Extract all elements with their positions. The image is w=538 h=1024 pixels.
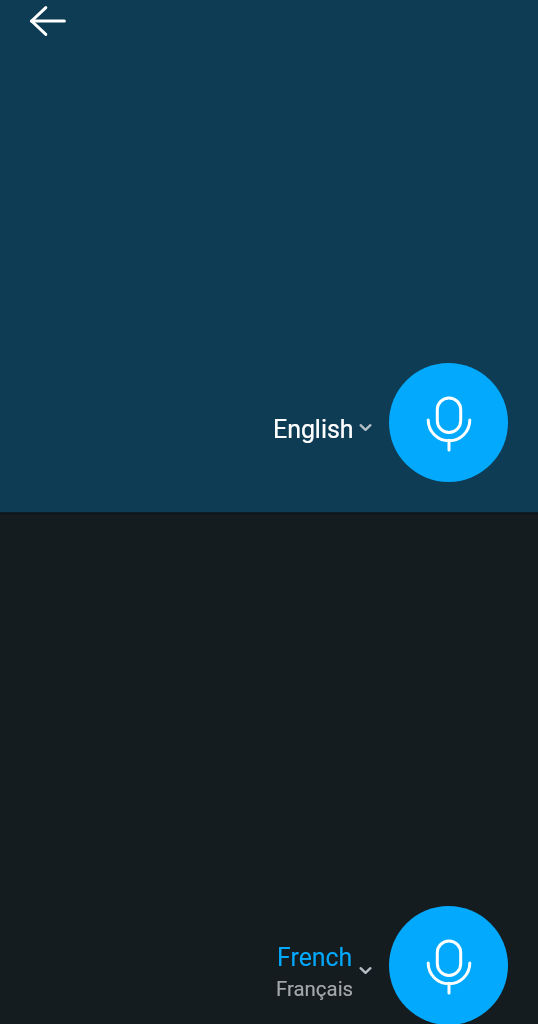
- button[interactable]: Speak English: [389, 363, 508, 482]
- button[interactable]: Speak French: [389, 906, 508, 1024]
- button[interactable]: Navigate up: [24, 0, 72, 45]
- staticText: Français: [276, 977, 354, 1001]
- staticText: English: [273, 415, 354, 444]
- staticText: French: [277, 943, 353, 972]
- button[interactable]: French: [267, 934, 379, 1004]
- button[interactable]: English: [267, 406, 379, 452]
